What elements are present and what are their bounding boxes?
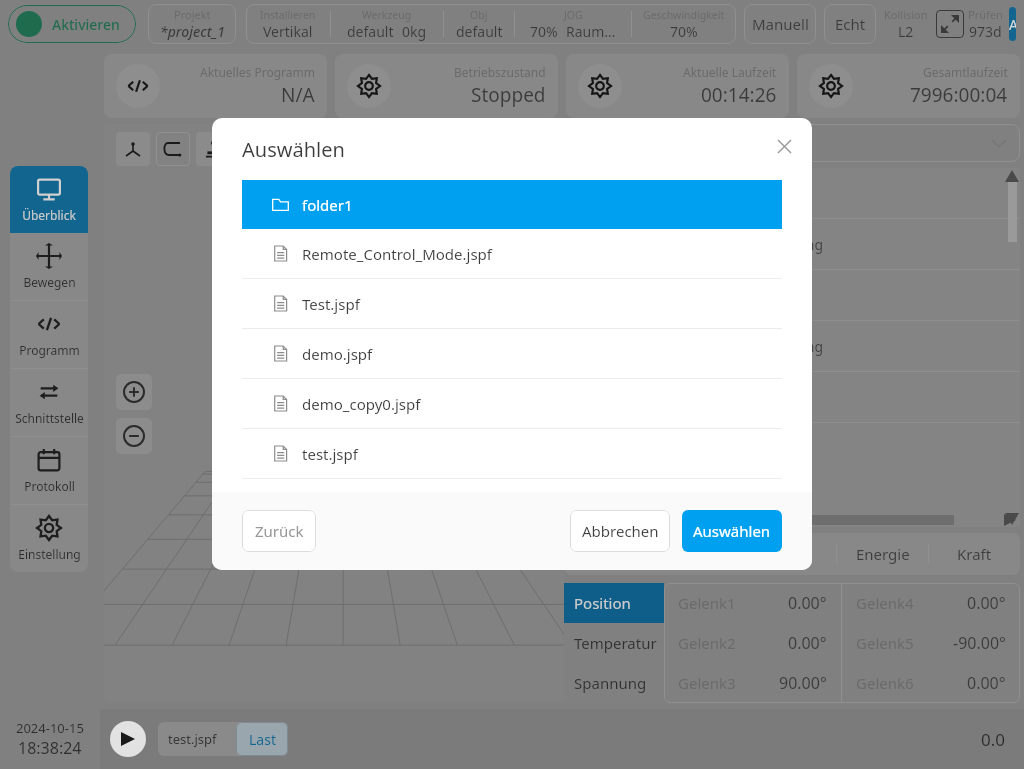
staticText: Werkzeug <box>362 8 412 22</box>
staticText: Betriebszustand <box>454 64 546 80</box>
button[interactable]: Echt <box>824 4 876 44</box>
button[interactable]: Last <box>236 722 288 756</box>
staticText: 0.0 <box>981 728 1006 751</box>
staticText: Manuell <box>752 14 809 34</box>
button[interactable]: Schnittstelle <box>10 369 88 436</box>
button[interactable]: Abbrechen <box>570 510 670 552</box>
staticText: 70% <box>530 22 558 41</box>
staticText: Last <box>249 730 276 749</box>
button[interactable]: Installieren <box>246 4 736 44</box>
staticText: test.jspf <box>168 730 217 748</box>
staticText: Zurück <box>255 521 304 541</box>
staticText: Installieren <box>260 8 316 22</box>
button[interactable]: Kraft <box>929 533 1020 575</box>
staticText: Einstellung <box>18 546 81 562</box>
button[interactable]: Temperatur <box>564 623 664 663</box>
button[interactable]: Remote_Control_Mode.jspf <box>242 229 782 278</box>
button[interactable]: Roboterstatus geändert:Stopped <box>564 270 1020 320</box>
staticText: Status <box>768 544 812 564</box>
staticText: L2 <box>898 22 914 41</box>
button[interactable]: Vollbild <box>936 10 964 38</box>
staticText: JOG <box>564 8 583 22</box>
staticText: Roboterstatus geändert:TaskRunning <box>578 337 823 356</box>
button[interactable]: Position <box>564 583 664 623</box>
staticText: -90.00° <box>953 632 1006 654</box>
button[interactable]: test.jspf <box>158 722 288 756</box>
staticText: demo_copy0.jspf <box>302 394 421 414</box>
staticText: 18:38:24 <box>18 737 82 759</box>
button[interactable]: folder1 <box>242 180 782 229</box>
button[interactable]: Aktivieren <box>8 5 136 43</box>
button[interactable]: Auswählen <box>682 510 782 552</box>
button[interactable] <box>564 124 1020 162</box>
staticText: 0.00° <box>788 592 827 614</box>
staticText: test.jspf <box>302 444 358 464</box>
button[interactable]: Bewegen <box>10 233 88 300</box>
button[interactable]: Roboterstatus:Enable <box>564 372 1020 422</box>
button[interactable]: Aktuelles Programm <box>104 54 327 118</box>
button[interactable]: Status <box>744 533 836 575</box>
staticText: 00:14:26 <box>701 82 777 108</box>
staticText: 0.00° <box>967 592 1006 614</box>
staticText: Schnittstelle <box>15 410 84 426</box>
staticText: default <box>456 22 503 41</box>
staticText: Abbrechen <box>582 521 659 541</box>
button[interactable]: Protokoll <box>10 437 88 504</box>
button[interactable]: Schließen <box>772 134 796 158</box>
button[interactable]: Überblick <box>10 166 88 233</box>
button[interactable]: Roboterstatus geändert:Stopped <box>564 168 1020 218</box>
staticText: Roboterstatus geändert:Stopped <box>578 184 794 203</box>
button[interactable]: test.jspf <box>242 429 782 478</box>
staticText: Test.jspf <box>302 294 360 314</box>
staticText: Echt <box>835 14 866 34</box>
button[interactable]: Werkzeug 1 <box>116 132 150 166</box>
staticText: Vertikal <box>263 22 313 41</box>
button[interactable]: Werkzeug 2 <box>156 132 190 166</box>
button[interactable]: Energie <box>837 533 928 575</box>
button[interactable]: Werkzeug 3 <box>196 132 230 166</box>
staticText: Energie <box>856 544 910 564</box>
staticText: Gelenk5 <box>856 633 914 653</box>
button[interactable]: Betriebszustand <box>335 54 558 118</box>
staticText: Remote_Control_Mode.jspf <box>302 244 492 264</box>
button[interactable]: A <box>1009 7 1016 41</box>
button[interactable]: Einstellung <box>10 505 88 572</box>
staticText: A <box>1009 15 1016 34</box>
staticText: 0.00° <box>967 672 1006 694</box>
button[interactable]: Zurück <box>242 510 316 552</box>
staticText: Position <box>574 593 631 613</box>
staticText: Roboterstatus geändert:TaskRunning <box>578 235 823 254</box>
staticText: Geschwindigkeit <box>643 8 725 22</box>
button[interactable]: Projekt <box>148 4 236 44</box>
staticText: 90.00° <box>779 672 827 694</box>
button[interactable]: Start <box>110 721 146 757</box>
button[interactable]: Programm <box>10 301 88 368</box>
button[interactable]: demo_copy0.jspf <box>242 379 782 428</box>
staticText: Temperatur <box>574 633 657 653</box>
button[interactable]: Aktuelle Laufzeit <box>566 54 789 118</box>
staticText: Kraft <box>957 544 992 564</box>
staticText: Auswählen <box>242 136 345 163</box>
button[interactable]: Spannung <box>564 663 664 703</box>
staticText: Aktivieren <box>52 15 120 34</box>
button[interactable]: Verkleinern <box>116 418 152 454</box>
staticText: Stopped <box>471 82 546 108</box>
staticText: Gelenk4 <box>856 593 914 613</box>
button[interactable]: demo.jspf <box>242 329 782 378</box>
button[interactable]: Manuell <box>744 4 816 44</box>
staticText: Gesamtlaufzeit <box>923 64 1008 80</box>
staticText: Gelenk6 <box>856 673 914 693</box>
staticText: 0.00° <box>788 632 827 654</box>
button[interactable]: Test.jspf <box>242 279 782 328</box>
staticText: default <box>347 22 394 41</box>
staticText: Gelenk1 <box>678 593 736 613</box>
button[interactable]: Roboterstatus geändert:TaskRunning <box>564 219 1020 269</box>
button[interactable]: Roboterstatus geändert:TaskRunning <box>564 321 1020 371</box>
button[interactable]: Gesamtlaufzeit <box>797 54 1020 118</box>
button[interactable]: Vergrößern <box>116 374 152 410</box>
staticText: Kollision <box>884 7 928 22</box>
staticText: Raum… <box>566 22 616 41</box>
staticText: Auswählen <box>693 521 771 541</box>
staticText: Projekt <box>174 7 211 22</box>
